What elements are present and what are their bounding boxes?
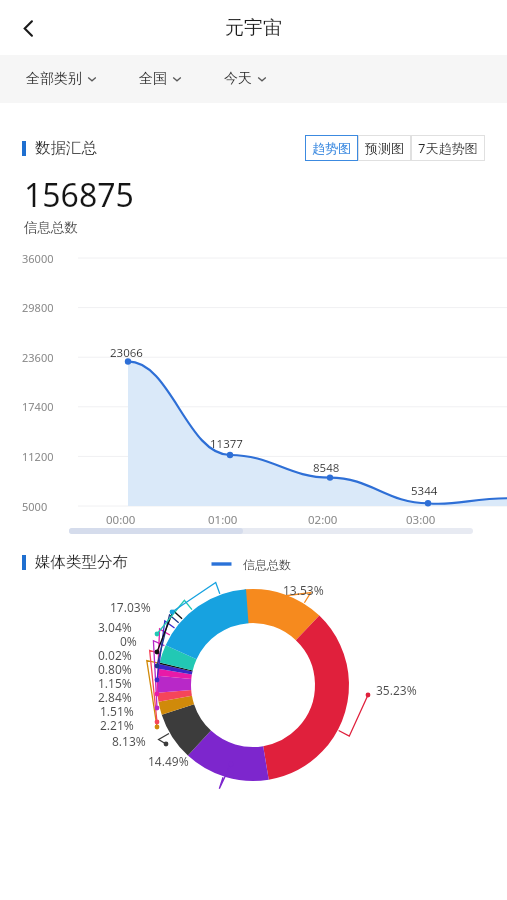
staticText: 03:00 [406, 512, 436, 528]
staticText: 信息总数 [243, 557, 291, 572]
staticText: 5344 [411, 483, 438, 499]
staticText: 全国 [139, 70, 167, 88]
staticText: 35.23% [376, 682, 417, 698]
staticText: 13.53% [283, 582, 324, 598]
staticText: 媒体类型分布 [35, 552, 128, 572]
staticText: 02:00 [308, 512, 338, 528]
staticText: 17.03% [110, 599, 151, 615]
staticText: 信息总数 [24, 219, 78, 236]
staticText: 0.80% [98, 661, 132, 677]
button[interactable]: 7天趋势图 [411, 135, 485, 161]
button[interactable]: 全国 [135, 64, 186, 94]
button[interactable]: 今天 [220, 64, 271, 94]
button[interactable]: 13.53% [0, 572, 507, 900]
staticText: 全部类别 [26, 70, 82, 88]
staticText: 5000 [22, 499, 48, 514]
staticText: 11200 [22, 449, 54, 464]
staticText: 36000 [22, 251, 54, 266]
staticText: 预测图 [365, 140, 404, 156]
staticText: 11377 [210, 436, 243, 452]
staticText: 156875 [24, 173, 134, 217]
button[interactable]: 全部类别 [22, 64, 101, 94]
staticText: 00:00 [106, 512, 136, 528]
staticText: 23600 [22, 350, 54, 365]
staticText: 17400 [22, 399, 54, 414]
staticText: 23066 [110, 345, 143, 361]
staticText: 1.15% [98, 675, 132, 691]
staticText: 01:00 [208, 512, 238, 528]
staticText: 7天趋势图 [418, 139, 478, 157]
staticText: 14.49% [148, 753, 189, 769]
staticText: 趋势图 [312, 140, 351, 156]
staticText: 3.04% [98, 619, 132, 635]
staticText: 数据汇总 [35, 138, 97, 158]
staticText: 元宇宙 [225, 16, 282, 40]
button[interactable]: 预测图 [358, 135, 411, 161]
staticText: 0% [120, 633, 137, 649]
staticText: 1.51% [100, 703, 134, 719]
staticText: 8.13% [112, 733, 146, 749]
button[interactable]: Back [6, 6, 50, 50]
staticText: 2.21% [100, 717, 134, 733]
staticText: 0.02% [98, 647, 132, 663]
staticText: 今天 [224, 70, 252, 88]
staticText: 2.84% [98, 689, 132, 705]
staticText: 8548 [313, 460, 340, 476]
staticText: 29800 [22, 300, 54, 315]
button[interactable]: 趋势图 [305, 135, 358, 161]
